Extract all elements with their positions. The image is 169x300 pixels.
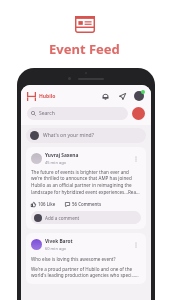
button[interactable]: More options bbox=[131, 240, 141, 250]
button[interactable]: Add a comment bbox=[31, 211, 141, 224]
staticText: Event Feed bbox=[49, 40, 120, 58]
button[interactable]: 106 Like bbox=[31, 201, 56, 207]
button[interactable]: Create post bbox=[132, 107, 145, 120]
button[interactable]: Profile bbox=[133, 90, 145, 102]
button[interactable]: More options bbox=[131, 154, 141, 164]
button[interactable]: Vivek Barot bbox=[26, 233, 146, 284]
staticText: We're a proud partner of Hubilo and one … bbox=[31, 266, 141, 279]
staticText: 45 min ago bbox=[45, 160, 67, 165]
staticText: Yuvraj Saxena bbox=[45, 152, 79, 159]
button[interactable]: Yuvraj Saxena bbox=[26, 147, 146, 229]
button[interactable]: Notifications bbox=[99, 90, 111, 102]
staticText: Search bbox=[39, 110, 55, 117]
staticText: Vivek Barot bbox=[45, 238, 73, 245]
staticText: The future of events is brighter than ev… bbox=[31, 169, 141, 196]
button[interactable]: 56 Comments bbox=[65, 201, 102, 207]
button[interactable]: Messages bbox=[116, 90, 128, 102]
staticText: Add a comment bbox=[45, 215, 80, 221]
staticText: Hubilo bbox=[39, 93, 56, 100]
staticText: 56 Comments bbox=[72, 201, 102, 207]
button[interactable]: Search bbox=[27, 107, 128, 120]
staticText: Who else is loving this awesome event? bbox=[31, 256, 116, 262]
button[interactable]: What's on your mind? bbox=[26, 128, 146, 143]
staticText: 60 min ago bbox=[45, 246, 67, 251]
staticText: 106 Like bbox=[38, 201, 56, 207]
staticText: What's on your mind? bbox=[43, 132, 94, 139]
